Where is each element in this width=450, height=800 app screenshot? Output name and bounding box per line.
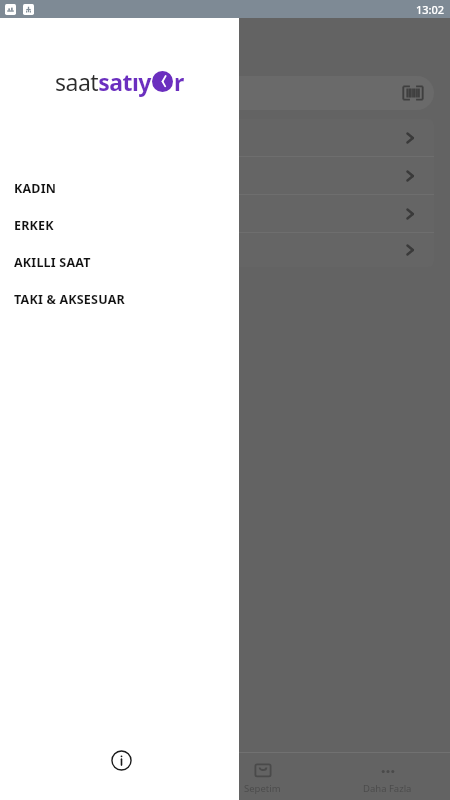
- button[interactable]: ERKEK: [0, 207, 239, 244]
- button[interactable]: [200, 233, 434, 267]
- button[interactable]: Daha Fazla: [325, 759, 450, 795]
- button[interactable]: TAKI & AKSESUAR: [0, 281, 239, 318]
- staticText: Daha Fazla: [363, 782, 412, 795]
- button[interactable]: [200, 157, 434, 194]
- staticText: 13:02: [416, 2, 445, 17]
- staticText: Sepetim: [244, 782, 281, 795]
- button[interactable]: Barkod tara: [200, 76, 434, 110]
- button[interactable]: Bilgi: [106, 745, 136, 775]
- button[interactable]: Barkod tara: [402, 82, 424, 104]
- button[interactable]: AKILLI SAAT: [0, 244, 239, 281]
- staticText: r: [174, 66, 185, 97]
- staticText: ERKEK: [14, 217, 54, 234]
- button[interactable]: [200, 119, 434, 156]
- button[interactable]: KADIN: [0, 170, 239, 207]
- button[interactable]: [200, 195, 434, 232]
- staticText: AKILLI SAAT: [14, 254, 91, 271]
- staticText: KADIN: [14, 180, 57, 197]
- staticText: saatsatıy: [55, 66, 151, 97]
- button[interactable]: Sepetim: [200, 759, 325, 795]
- staticText: TAKI & AKSESUAR: [14, 291, 125, 308]
